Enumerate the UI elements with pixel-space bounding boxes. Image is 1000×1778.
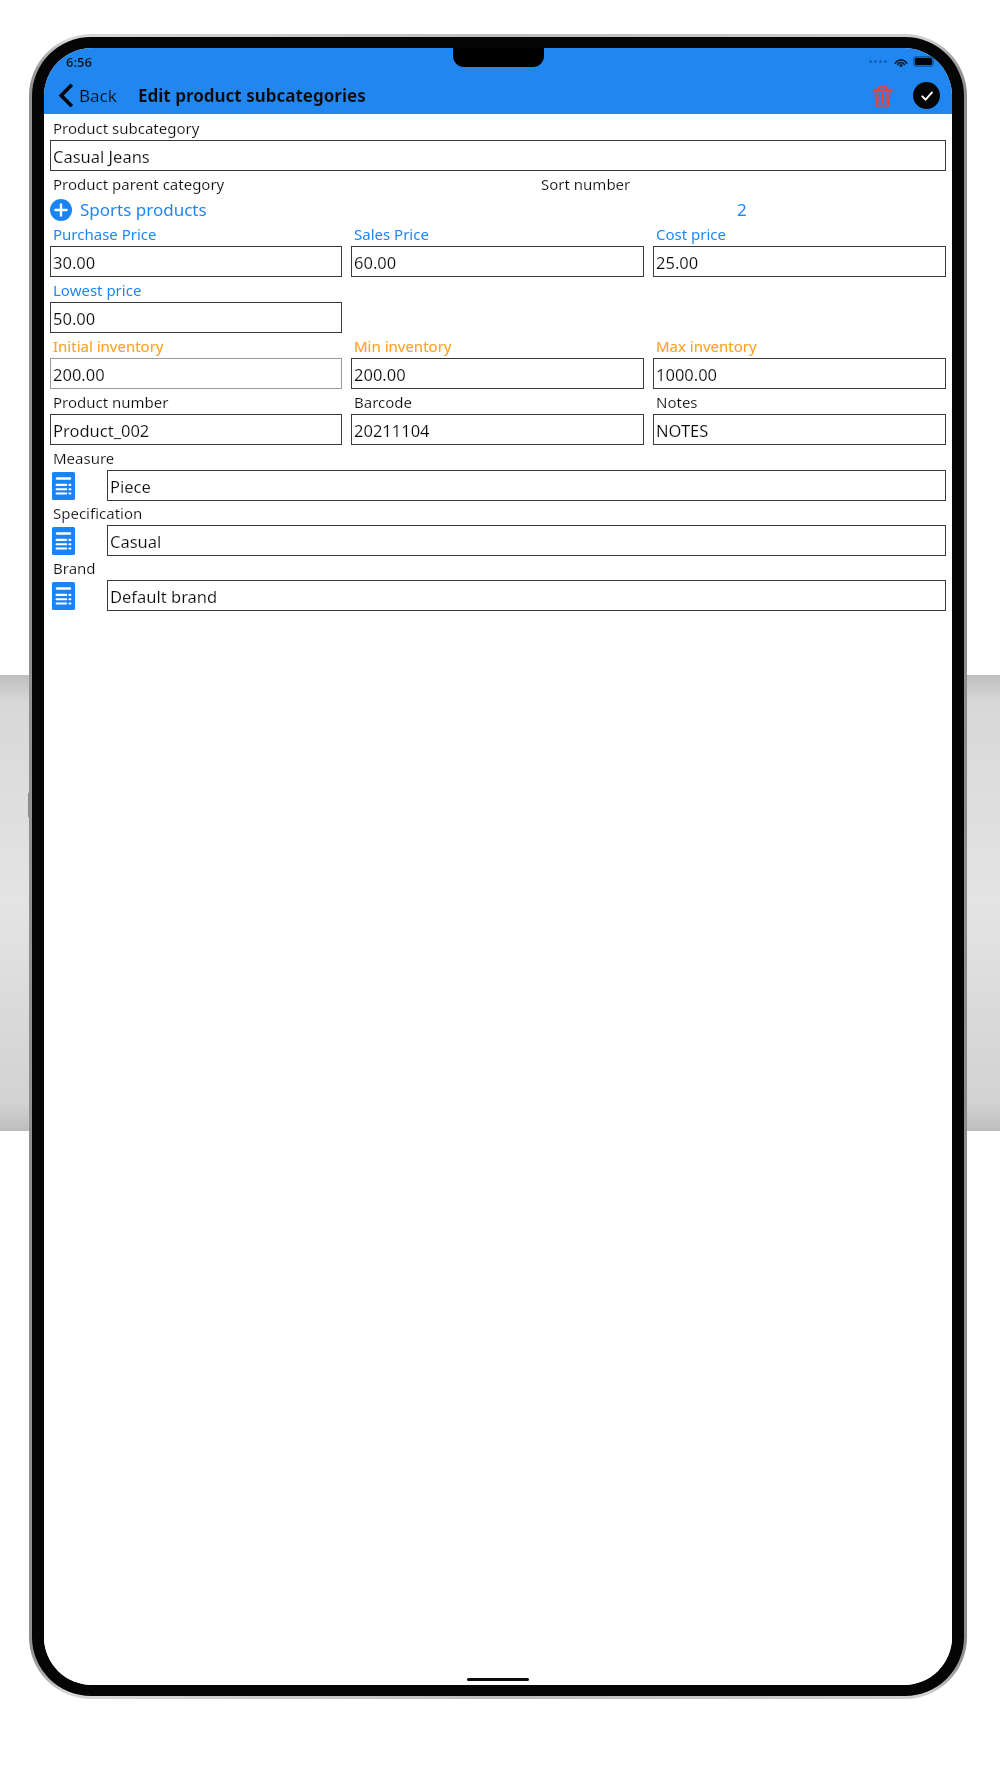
staticText: Lowest price (53, 280, 142, 300)
staticText: Max inventory (656, 336, 757, 356)
button[interactable]: 20211104 (351, 414, 644, 445)
staticText: Sort number (541, 174, 631, 194)
staticText: Casual Jeans (53, 145, 150, 167)
staticText: 200.00 (354, 363, 406, 385)
button[interactable]: 200.00 (50, 358, 342, 389)
button[interactable]: 25.00 (653, 246, 946, 277)
button[interactable]: Default brand (107, 580, 946, 611)
staticText: 200.00 (53, 363, 105, 385)
button[interactable]: Choose Specification (50, 527, 77, 555)
staticText: 50.00 (53, 307, 96, 329)
button[interactable]: Product_002 (50, 414, 342, 445)
staticText: Piece (110, 475, 151, 497)
staticText: Product parent category (53, 174, 225, 194)
staticText: Brand (53, 558, 96, 578)
staticText: Sports products (80, 198, 207, 221)
staticText: Barcode (354, 392, 413, 412)
staticText: 20211104 (354, 419, 430, 441)
button[interactable]: Sports products (50, 198, 538, 221)
staticText: Specification (53, 503, 143, 523)
staticText: Sales Price (354, 224, 429, 244)
staticText: 2 (737, 198, 747, 221)
button[interactable]: Casual Jeans (50, 140, 946, 171)
staticText: 60.00 (354, 251, 397, 273)
staticText: 6:56 (66, 53, 92, 71)
staticText: NOTES (656, 419, 709, 441)
button[interactable]: 1000.00 (653, 358, 946, 389)
button[interactable]: NOTES (653, 414, 946, 445)
staticText: Product number (53, 392, 169, 412)
button[interactable]: Choose Measure (50, 472, 77, 500)
staticText: Cost price (656, 224, 727, 244)
button[interactable]: 30.00 (50, 246, 342, 277)
staticText: 1000.00 (656, 363, 718, 385)
staticText: Product_002 (53, 419, 150, 441)
button[interactable]: Delete (868, 80, 897, 112)
button[interactable]: 2 (538, 198, 946, 221)
button[interactable]: Piece (107, 470, 946, 501)
staticText: Casual (110, 530, 162, 552)
staticText: 30.00 (53, 251, 96, 273)
staticText: Min inventory (354, 336, 452, 356)
staticText: Back (79, 84, 117, 107)
button[interactable]: Save (913, 82, 940, 109)
staticText: Measure (53, 448, 115, 468)
staticText: 25.00 (656, 251, 699, 273)
button[interactable]: Casual (107, 525, 946, 556)
staticText: Purchase Price (53, 224, 157, 244)
staticText: Product subcategory (53, 118, 200, 138)
button[interactable]: Choose Brand (50, 582, 77, 610)
staticText: Initial inventory (53, 336, 164, 356)
button[interactable]: Back (56, 80, 121, 111)
staticText: Edit product subcategories (138, 84, 366, 107)
button[interactable]: 200.00 (351, 358, 644, 389)
button[interactable]: 50.00 (50, 302, 342, 333)
staticText: Notes (656, 392, 698, 412)
button[interactable]: 60.00 (351, 246, 644, 277)
staticText: Default brand (110, 585, 218, 607)
